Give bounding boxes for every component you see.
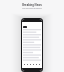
button[interactable]: Profile <box>38 63 41 66</box>
button[interactable]: Home indicator <box>22 68 42 71</box>
button[interactable]: Live tag <box>23 26 27 28</box>
button[interactable]: Alerts <box>35 63 38 66</box>
button[interactable]: App bar <box>22 19 42 22</box>
button[interactable]: Home <box>23 63 26 66</box>
staticText: Stay informed anywhere <box>22 7 42 9</box>
button[interactable]: Search <box>26 63 29 66</box>
staticText: Breaking News <box>22 3 42 7</box>
button[interactable]: Saved <box>32 63 35 66</box>
button[interactable]: Topics <box>29 63 32 66</box>
